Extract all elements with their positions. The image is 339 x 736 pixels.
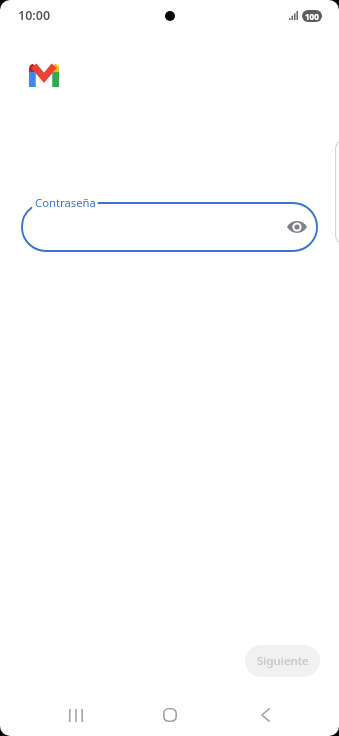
staticText: 10:00 (18, 7, 51, 24)
staticText: Contraseña (35, 195, 96, 210)
button[interactable]: Atrás (241, 691, 289, 736)
button[interactable]: Recientes (52, 691, 100, 736)
button[interactable]: Inicio (146, 691, 194, 736)
button[interactable]: Mostrar contraseña (285, 215, 309, 239)
button[interactable]: Contraseña (21, 202, 318, 252)
staticText: Siguiente (257, 653, 309, 669)
staticText: 100 (305, 11, 319, 22)
button[interactable]: Siguiente (245, 645, 320, 677)
